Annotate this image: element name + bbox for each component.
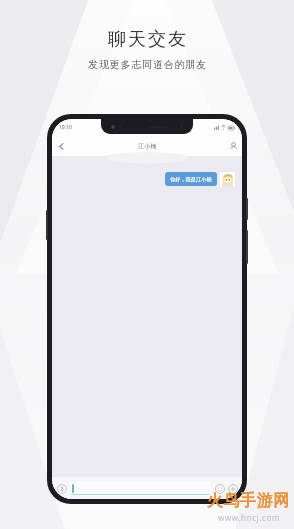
button[interactable]: 更多: [227, 483, 238, 494]
staticText: 火鸟手游网: [207, 491, 290, 511]
button[interactable]: 返回: [52, 137, 70, 155]
button[interactable]: [70, 482, 211, 495]
staticText: 聊天交友: [107, 28, 187, 51]
button[interactable]: 语音: [56, 483, 67, 494]
button[interactable]: 个人资料: [224, 137, 242, 155]
staticText: 10:10: [59, 124, 72, 131]
button[interactable]: 表情: [214, 483, 225, 494]
staticText: 你好，我是江小楠: [170, 176, 212, 182]
staticText: www.hncj.com: [218, 512, 280, 523]
staticText: 发现更多志同道合的朋友: [88, 58, 207, 71]
button[interactable]: 头像: [220, 172, 235, 187]
button[interactable]: 你好，我是江小楠: [165, 172, 217, 186]
staticText: 江小楠: [138, 142, 157, 150]
